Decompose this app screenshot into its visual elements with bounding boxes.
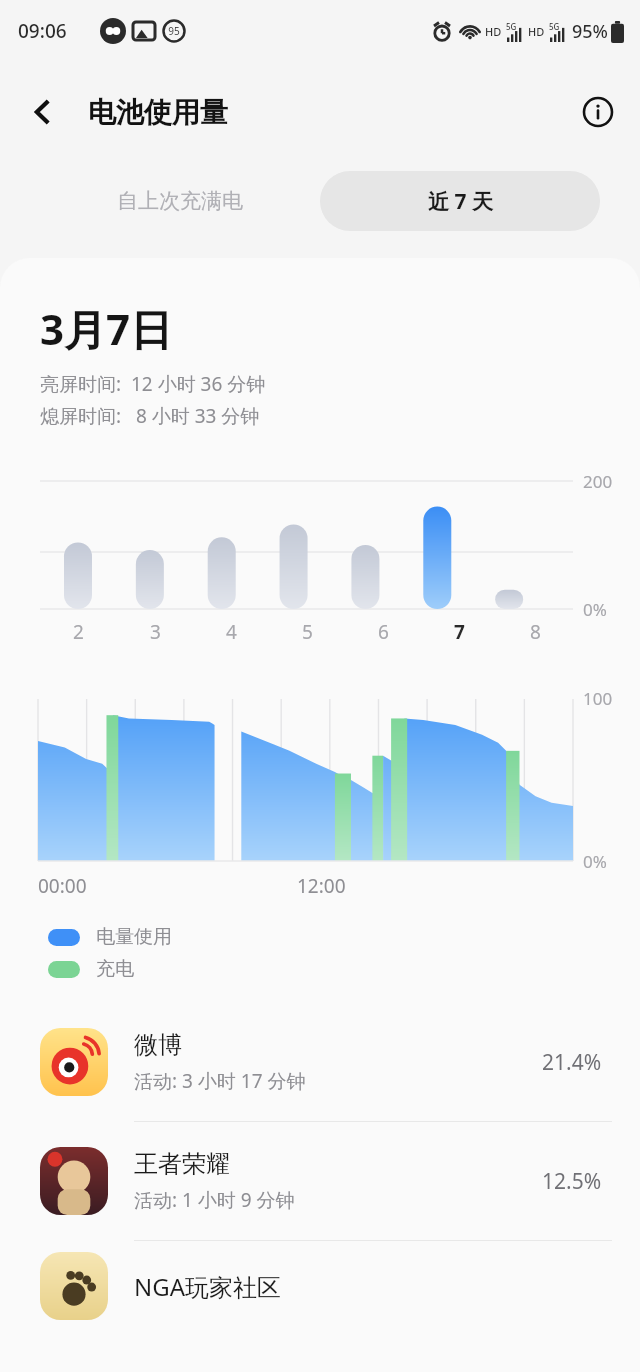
staticText: 熄屏时间: 8 小时 33 分钟 [40,403,260,429]
staticText: 2 [73,619,84,645]
staticText: 王者荣耀 [134,1149,230,1179]
staticText: 近 7 天 [428,187,493,216]
button[interactable]: 王者荣耀 [0,1122,640,1241]
staticText: HD [485,24,502,39]
button[interactable]: 微博 [0,1003,640,1122]
staticText: 电池使用量 [88,95,228,130]
staticText: 亮屏时间: 12 小时 36 分钟 [40,371,266,397]
staticText: HD [528,24,545,39]
staticText: 8 [530,619,541,645]
staticText: 5G [506,21,517,32]
staticText: 活动: 1 小时 9 分钟 [134,1187,295,1213]
staticText: 12.5% [542,1167,602,1196]
button[interactable]: Back [14,84,70,140]
staticText: NGA玩家社区 [134,1270,282,1303]
staticText: 00:00 [38,873,87,899]
button[interactable]: Information [570,84,626,140]
staticText: 4 [226,619,237,645]
staticText: 0% [583,850,607,873]
staticText: 09:06 [18,18,67,44]
staticText: 5 [302,619,313,645]
staticText: 充电 [96,957,134,981]
staticText: 200 [583,470,613,493]
staticText: 100 [583,687,613,710]
staticText: 12:00 [297,873,346,899]
staticText: 7 [454,619,465,645]
staticText: 95% [572,19,608,44]
staticText: 3月7日 [40,300,173,357]
staticText: 0% [583,598,607,621]
staticText: 5G [549,21,560,32]
button[interactable]: 自上次充满电 [40,171,320,231]
staticText: 自上次充满电 [117,188,243,214]
staticText: 微博 [134,1030,182,1060]
staticText: 活动: 3 小时 17 分钟 [134,1068,306,1094]
staticText: 3 [150,619,161,645]
button[interactable]: NGA玩家社区 [0,1241,640,1331]
staticText: 6 [378,619,389,645]
staticText: 电量使用 [96,925,172,949]
staticText: 21.4% [542,1048,602,1077]
button[interactable]: 近 7 天 [320,171,600,231]
staticText: 95 [164,24,184,38]
